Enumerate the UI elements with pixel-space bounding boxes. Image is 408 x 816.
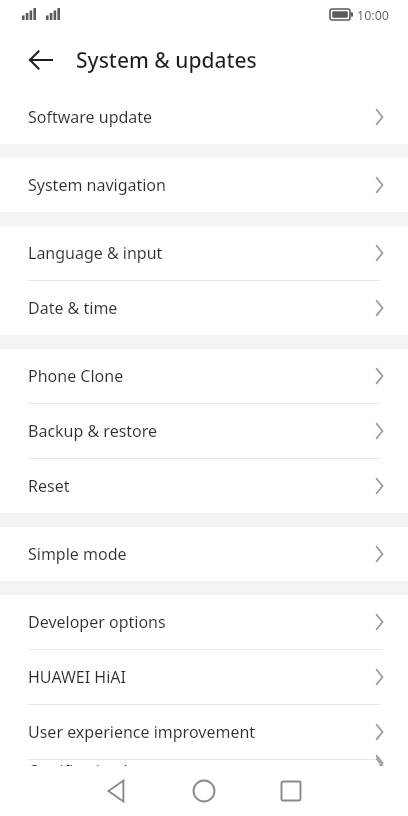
staticText: Language & input	[28, 242, 370, 264]
staticText: Backup & restore	[28, 420, 370, 442]
button[interactable]: HUAWEI HiAI	[0, 650, 408, 704]
button[interactable]: Simple mode	[0, 527, 408, 581]
staticText: Phone Clone	[28, 365, 370, 387]
staticText: Software update	[28, 106, 370, 128]
button[interactable]: Date & time	[0, 281, 408, 335]
button[interactable]: Reset	[0, 459, 408, 513]
staticText: Reset	[28, 475, 370, 497]
button[interactable]: Back	[93, 767, 141, 815]
staticText: Developer options	[28, 611, 370, 633]
button[interactable]: Software update	[0, 90, 408, 144]
button[interactable]: Language & input	[0, 226, 408, 280]
button[interactable]: Certification logos	[0, 760, 408, 766]
staticText: 10:00	[357, 7, 389, 24]
button[interactable]: Back	[17, 36, 65, 84]
staticText: Simple mode	[28, 543, 370, 565]
button[interactable]: System navigation	[0, 158, 408, 212]
staticText: Date & time	[28, 297, 370, 319]
staticText: Certification logos	[28, 760, 370, 766]
staticText: User experience improvement	[28, 721, 370, 743]
button[interactable]: Home	[180, 767, 228, 815]
staticText: System & updates	[76, 46, 257, 75]
button[interactable]: Developer options	[0, 595, 408, 649]
staticText: System navigation	[28, 174, 370, 196]
button[interactable]: Phone Clone	[0, 349, 408, 403]
button[interactable]: User experience improvement	[0, 705, 408, 759]
staticText: HUAWEI HiAI	[28, 666, 370, 688]
button[interactable]: Backup & restore	[0, 404, 408, 458]
button[interactable]: Recent apps	[267, 767, 315, 815]
